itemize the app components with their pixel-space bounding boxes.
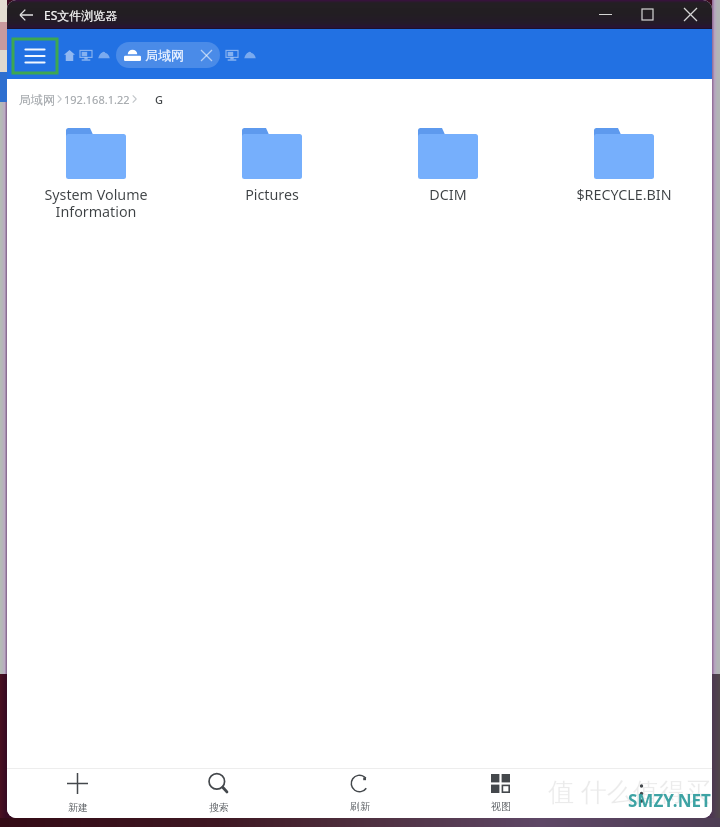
- button[interactable]: Close: [668, 0, 712, 29]
- staticText: 刷新: [350, 800, 370, 813]
- button[interactable]: DCIM: [360, 128, 536, 204]
- staticText: 值 什么值得买: [548, 773, 711, 809]
- button[interactable]: Network: [94, 45, 114, 65]
- staticText: 搜索: [209, 801, 229, 814]
- button[interactable]: 局域网: [116, 42, 220, 68]
- button[interactable]: More options: [571, 769, 712, 818]
- button[interactable]: Cloud: [240, 45, 260, 65]
- staticText: 新建: [68, 801, 88, 814]
- button[interactable]: 搜索: [148, 769, 289, 818]
- button[interactable]: System Volume Information: [7, 128, 184, 222]
- button[interactable]: Maximize: [626, 0, 668, 29]
- staticText: SMZY.NET: [628, 789, 711, 812]
- button[interactable]: Pictures: [184, 128, 360, 204]
- button[interactable]: 192.168.1.22: [64, 92, 130, 107]
- staticText: 局域网: [145, 47, 184, 63]
- button[interactable]: Minimize: [584, 0, 626, 29]
- button[interactable]: Computer 2: [222, 45, 242, 65]
- staticText: $RECYCLE.BIN: [576, 185, 672, 204]
- staticText: Pictures: [245, 185, 299, 204]
- staticText: DCIM: [429, 185, 467, 204]
- button[interactable]: Computer: [76, 45, 96, 65]
- button[interactable]: 视图: [430, 769, 571, 818]
- button[interactable]: Back: [7, 0, 44, 29]
- button[interactable]: Menu: [13, 39, 57, 73]
- staticText: ES文件浏览器: [44, 7, 118, 23]
- staticText: System Volume Information: [44, 185, 148, 222]
- button[interactable]: 局域网: [19, 92, 55, 107]
- button[interactable]: 新建: [7, 769, 148, 818]
- button[interactable]: Home: [59, 45, 79, 65]
- staticText: 视图: [491, 800, 511, 813]
- button[interactable]: $RECYCLE.BIN: [536, 128, 712, 204]
- button[interactable]: G: [155, 92, 163, 107]
- button[interactable]: 刷新: [289, 769, 430, 818]
